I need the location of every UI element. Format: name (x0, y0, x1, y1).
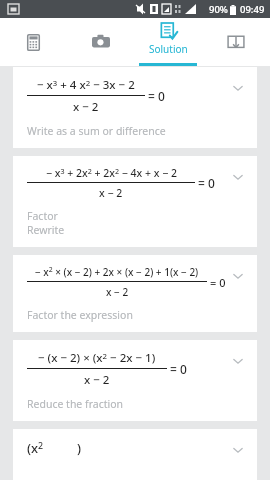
staticText: 09:49 (240, 3, 265, 16)
staticText: x − 2 (84, 372, 110, 388)
staticText: = 0 (198, 175, 215, 191)
staticText: − x2 × (x − 2) + 2x × (x − 2) + 1(x − 2) (35, 265, 199, 279)
staticText: Factor the expression (27, 308, 133, 322)
staticText: x − 2 (99, 186, 123, 200)
staticText: Rewrite (27, 223, 65, 237)
button[interactable]: Glossary (202, 18, 270, 66)
other: Camera (92, 33, 110, 51)
button[interactable]: − x3 + 2x2 + 2x2 − 4x + x − 2 (13, 156, 257, 247)
other: Glossary (227, 33, 245, 51)
staticText: Solution (149, 42, 188, 56)
staticText: − x3 + 2x2 + 2x2 − 4x + x − 2 (46, 166, 177, 180)
button[interactable]: (x2 ) (13, 429, 257, 480)
staticText: (x2 ) (27, 439, 82, 457)
button[interactable]: − (x − 2) × (x2 − 2x − 1) (13, 340, 257, 421)
staticText: = 0 (170, 361, 187, 377)
button[interactable]: Solution (134, 18, 202, 66)
button[interactable]: − x2 × (x − 2) + 2x × (x − 2) + 1(x − 2) (13, 255, 257, 332)
staticText: Factor (27, 209, 58, 223)
staticText: − x3 + 4 x2 − 3x − 2 (37, 77, 135, 93)
staticText: = 0 (210, 275, 226, 290)
staticText: − (x − 2) × (x2 − 2x − 1) (38, 350, 156, 366)
other: Calculator (25, 34, 42, 51)
staticText: = 0 (148, 88, 165, 104)
button[interactable]: − x3 + 4 x2 − 3x − 2 (13, 67, 257, 148)
staticText: Write as a sum or difference (27, 124, 166, 138)
staticText: Reduce the fraction (27, 397, 124, 411)
button[interactable]: Camera (67, 18, 134, 66)
other: Solution (160, 23, 177, 40)
button[interactable]: Calculator (0, 18, 67, 66)
staticText: x − 2 (73, 99, 99, 115)
staticText: x − 2 (106, 285, 129, 299)
staticText: 90% (209, 3, 228, 16)
